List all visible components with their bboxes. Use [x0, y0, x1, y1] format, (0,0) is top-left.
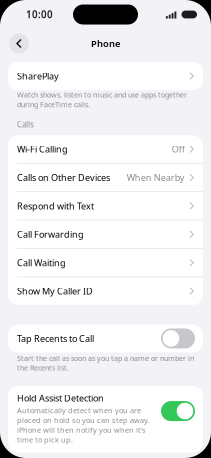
- staticText: Show My Caller ID: [17, 285, 93, 297]
- staticText: Calls: [17, 119, 34, 130]
- staticText: Hold Assist Detection: [17, 392, 104, 404]
- staticText: Call Waiting: [17, 257, 66, 269]
- staticText: Wi-Fi Calling: [17, 143, 68, 155]
- staticText: Watch shows, listen to music and use app…: [17, 90, 187, 109]
- staticText: Automatically detect when you are placed…: [17, 406, 149, 445]
- staticText: Off: [172, 143, 185, 155]
- staticText: When Nearby: [127, 171, 185, 183]
- button[interactable]: Call Waiting: [8, 249, 203, 276]
- button[interactable]: Wi-Fi Calling: [8, 135, 203, 163]
- staticText: Tap Recents to Call: [17, 332, 94, 344]
- staticText: Call Forwarding: [17, 228, 84, 240]
- staticText: Calls on Other Devices: [17, 171, 110, 183]
- staticText: Respond with Text: [17, 200, 94, 212]
- staticText: 10:00: [26, 8, 53, 21]
- button[interactable]: SharePlay: [8, 62, 203, 90]
- button[interactable]: Hold Assist Detection: [8, 386, 203, 453]
- button[interactable]: Back: [6, 30, 32, 56]
- button[interactable]: Calls on Other Devices: [8, 164, 203, 191]
- staticText: SharePlay: [17, 70, 59, 82]
- staticText: Start the call as soon as you tap a name…: [17, 353, 194, 372]
- button[interactable]: Call Forwarding: [8, 220, 203, 248]
- button[interactable]: Show My Caller ID: [8, 277, 203, 305]
- button[interactable]: Tap Recents to Call: [8, 324, 203, 352]
- button[interactable]: Respond with Text: [8, 192, 203, 220]
- staticText: Phone: [91, 37, 120, 50]
